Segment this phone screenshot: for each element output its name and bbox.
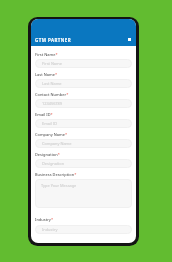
staticText: 123456789 [42,101,63,106]
button[interactable]: Designation [35,159,132,168]
staticText: First Name* [35,52,58,57]
staticText: Email ID [42,121,58,126]
button[interactable]: Type Your Message [35,179,132,208]
staticText: Business Description* [35,172,77,177]
staticText: Designation* [35,152,60,157]
staticText: Company Name [42,141,72,146]
button[interactable]: Email ID [35,119,132,128]
staticText: First Name [42,61,62,66]
button[interactable]: Last Name [35,79,132,88]
staticText: Email ID* [35,112,53,117]
staticText: Type Your Message [41,183,77,188]
staticText: Last Name [42,81,62,86]
staticText: Industry* [35,217,54,222]
staticText: Industry [42,227,58,232]
button[interactable]: Company Name [35,139,132,148]
button[interactable]: 123456789 [35,99,132,108]
staticText: Contact Number* [35,92,69,97]
button[interactable]: Industry [35,225,132,234]
staticText: GTM PARTNER [35,37,72,43]
staticText: Last Name* [35,72,58,77]
button[interactable]: First Name [35,59,132,68]
staticText: Company Name* [35,132,68,137]
staticText: Designation [42,161,65,166]
button[interactable]: Menu [126,36,133,43]
